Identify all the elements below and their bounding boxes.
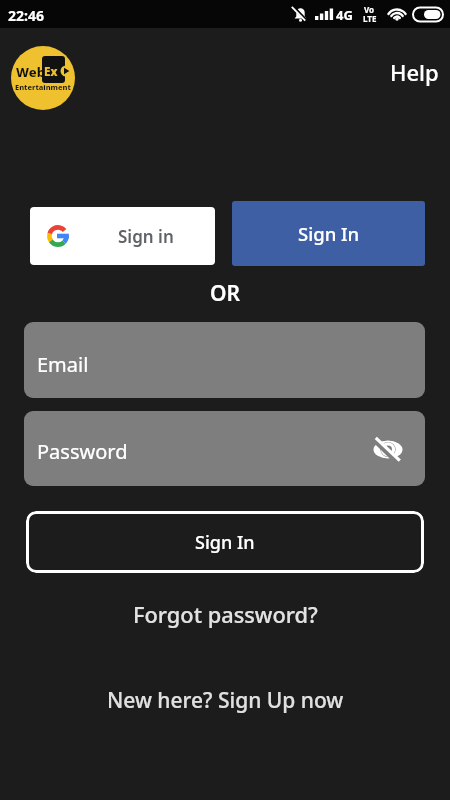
button[interactable]: New here? Sign Up now bbox=[95, 683, 355, 717]
staticText: Sign In bbox=[195, 530, 255, 555]
staticText: Entertainment bbox=[15, 82, 71, 92]
button[interactable]: Forgot password? bbox=[120, 598, 330, 632]
staticText: 22:46 bbox=[8, 6, 44, 25]
staticText: Forgot password? bbox=[133, 600, 318, 630]
button[interactable]: Help bbox=[374, 50, 450, 94]
staticText: OR bbox=[210, 279, 241, 308]
staticText: Sign in bbox=[118, 225, 174, 248]
staticText: Help bbox=[390, 57, 439, 87]
staticText: Sign In bbox=[298, 221, 360, 246]
staticText: Email bbox=[37, 351, 89, 378]
button[interactable]: Sign in bbox=[30, 207, 215, 265]
button[interactable]: Sign In bbox=[232, 201, 425, 266]
button[interactable] bbox=[372, 434, 404, 466]
button[interactable]: Email bbox=[24, 322, 425, 398]
staticText: Ex bbox=[44, 64, 58, 80]
staticText: Web bbox=[16, 63, 45, 81]
button[interactable]: Sign In bbox=[26, 511, 424, 573]
staticText: Password bbox=[37, 438, 128, 465]
staticText: New here? Sign Up now bbox=[107, 686, 344, 715]
button[interactable]: Password bbox=[24, 411, 425, 486]
staticText: LTE bbox=[363, 13, 377, 24]
staticText: Vo bbox=[364, 4, 375, 15]
staticText: 4G bbox=[336, 6, 353, 24]
